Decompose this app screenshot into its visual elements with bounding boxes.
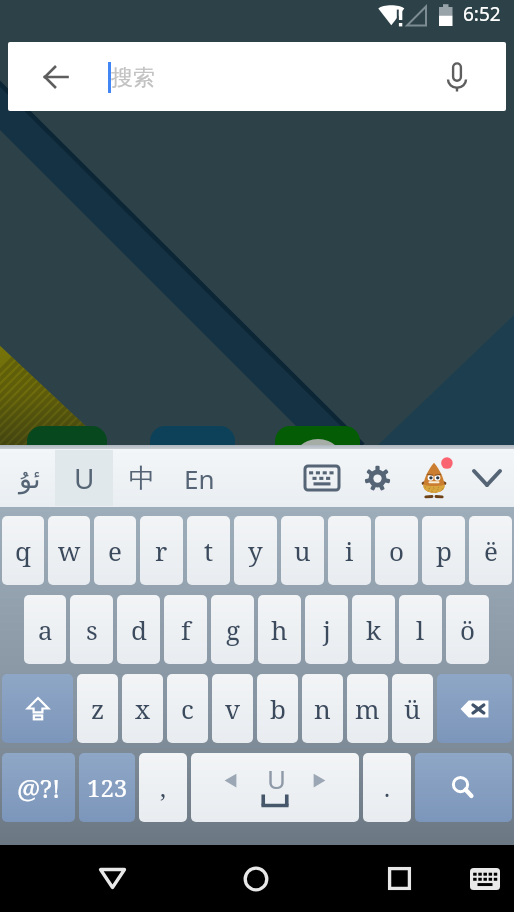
staticText: ö [460,612,476,647]
button[interactable] [2,674,73,743]
staticText: b [270,691,286,726]
button[interactable]: g [211,595,254,664]
staticText: 123 [87,771,128,804]
other: Backspace [435,669,514,748]
staticText: ü [404,691,421,726]
other: Space [189,748,361,827]
staticText: y [248,533,263,568]
staticText: w [58,533,81,568]
staticText: U [74,459,95,497]
button[interactable]: U [55,450,113,506]
button[interactable]: r [140,516,183,585]
staticText: u [294,533,311,568]
button[interactable]: w [48,516,90,585]
button[interactable]: ü [392,674,433,743]
staticText: . [384,771,390,804]
button[interactable]: e [94,516,136,585]
button[interactable]: v [212,674,253,743]
staticText: @?! [17,771,61,805]
button[interactable] [415,753,512,822]
staticText: v [225,691,241,726]
button[interactable]: ë [469,516,512,585]
button[interactable]: u [281,516,324,585]
button[interactable]: m [347,674,388,743]
staticText: s [86,612,98,647]
staticText: 6:52 [463,1,501,27]
staticText: U [267,761,287,796]
staticText: h [271,612,288,647]
staticText: t [204,533,214,568]
staticText: k [366,612,382,647]
staticText: ë [484,533,498,568]
other: Search [413,748,514,827]
staticText: d [131,612,147,647]
staticText: x [135,691,151,726]
button[interactable]: b [257,674,298,743]
staticText: l [416,612,425,647]
button[interactable] [437,674,512,743]
button[interactable]: c [167,674,208,743]
button[interactable]: q [2,516,44,585]
button[interactable]: z [77,674,118,743]
button[interactable]: s [70,595,113,664]
button[interactable]: Switch keyboard [449,845,514,912]
staticText: c [181,691,194,726]
staticText: 搜索 [111,64,155,92]
button[interactable]: , [139,753,187,822]
button[interactable]: @?! [2,753,75,822]
button[interactable]: 中 [115,449,169,507]
button[interactable]: ئۇ [4,449,55,507]
button[interactable]: i [328,516,371,585]
button[interactable]: t [187,516,230,585]
button[interactable]: d [117,595,160,664]
button[interactable]: Back [56,845,168,912]
button[interactable]: k [352,595,395,664]
staticText: a [38,612,53,647]
button[interactable]: l [399,595,442,664]
staticText: i [345,533,354,568]
staticText: f [181,612,191,647]
button[interactable]: j [305,595,348,664]
staticText: r [155,533,168,568]
button[interactable]: f [164,595,207,664]
staticText: q [15,533,31,568]
button[interactable]: En [169,449,229,507]
button[interactable]: . [363,753,411,822]
button[interactable]: Settings [351,449,403,507]
button[interactable]: Home [200,845,312,912]
staticText: ئۇ [19,463,41,494]
button[interactable]: Voice search [434,54,480,100]
button[interactable]: 123 [79,753,135,822]
other: Shift [0,669,75,748]
staticText: , [160,771,166,804]
staticText: En [184,461,215,496]
button[interactable]: x [122,674,163,743]
staticText: e [108,533,122,568]
staticText: z [91,691,105,726]
button[interactable]: a [24,595,66,664]
button[interactable]: o [375,516,418,585]
staticText: p [436,533,452,568]
button[interactable]: ö [446,595,489,664]
button[interactable]: y [234,516,277,585]
button[interactable]: Emoji [408,449,460,507]
staticText: n [314,691,331,726]
staticText: 中 [129,462,155,495]
button[interactable]: Hide keyboard [460,449,514,507]
button[interactable]: U [191,753,359,822]
button[interactable]: Back [30,51,82,103]
button[interactable]: Recent apps [343,845,455,912]
button[interactable]: n [302,674,343,743]
staticText: g [226,612,240,647]
button[interactable]: p [422,516,465,585]
staticText: j [323,612,331,647]
staticText: o [389,533,405,568]
staticText: m [355,691,380,726]
button[interactable]: Keyboard layout [296,449,348,507]
button[interactable]: h [258,595,301,664]
